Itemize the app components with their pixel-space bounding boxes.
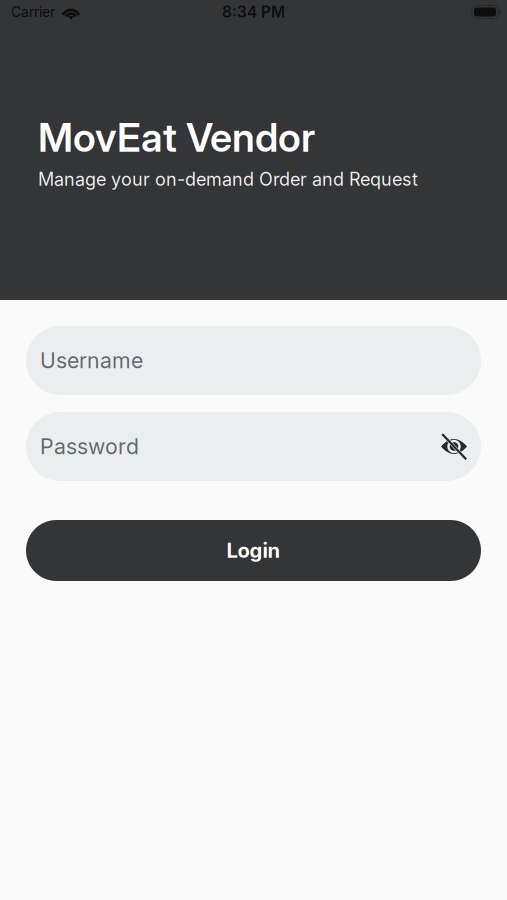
staticText: Password — [40, 434, 139, 459]
button[interactable]: Login — [26, 520, 481, 581]
button[interactable]: Username — [26, 326, 481, 395]
staticText: Login — [226, 538, 280, 563]
staticText: Username — [40, 348, 143, 373]
staticText: 8:34 PM — [222, 3, 285, 21]
staticText: MovEat Vendor — [38, 113, 315, 161]
staticText: Carrier — [11, 3, 55, 20]
staticText: Manage your on-demand Order and Request — [38, 168, 418, 190]
button[interactable]: Show password — [435, 425, 477, 467]
